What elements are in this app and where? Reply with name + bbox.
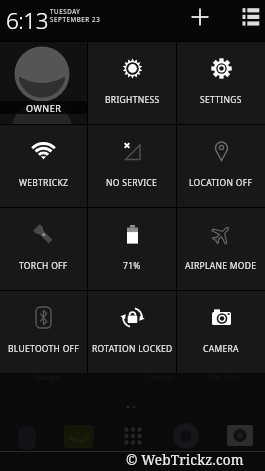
button[interactable]: BLUETOOTH OFF	[0, 291, 87, 373]
staticText: SETTINGS	[200, 94, 242, 106]
button[interactable]: WEBTRICKZ	[0, 125, 87, 207]
button[interactable]: 71%	[88, 208, 176, 290]
button[interactable]	[14, 421, 46, 453]
staticText: BLUETOOTH OFF	[8, 343, 80, 355]
staticText: CAMERA	[203, 343, 239, 355]
staticText: 6:13	[6, 5, 49, 36]
button[interactable]: NO SERVICE	[88, 125, 176, 207]
staticText: WEBTRICKZ	[19, 177, 69, 189]
button[interactable]	[242, 6, 262, 26]
staticText: 71%	[123, 260, 141, 272]
button[interactable]: BRIGHTNESS	[88, 42, 176, 124]
staticText: AIRPLANE MODE	[185, 260, 257, 272]
staticText: ROTATION LOCKED	[92, 343, 173, 355]
staticText: Settings	[148, 373, 175, 383]
button[interactable]	[170, 421, 202, 453]
staticText: Play Store	[208, 373, 241, 383]
staticText: BRIGHTNESS	[105, 94, 160, 106]
staticText: TORCH OFF	[19, 260, 68, 272]
staticText: LOCATION OFF	[189, 177, 253, 189]
button[interactable]: LOCATION OFF	[177, 125, 265, 207]
staticText: Google	[36, 373, 60, 383]
button[interactable]	[190, 7, 210, 27]
button[interactable]: SETTINGS	[177, 42, 265, 124]
button[interactable]: OWNER	[0, 42, 87, 124]
staticText: © WebTrickz.com	[126, 451, 244, 469]
button[interactable]: ROTATION LOCKED	[88, 291, 176, 373]
staticText: OWNER	[26, 102, 62, 114]
staticText: SEPTEMBER 23	[50, 15, 101, 23]
button[interactable]	[66, 421, 98, 453]
button[interactable]: TORCH OFF	[0, 208, 87, 290]
button[interactable]	[118, 421, 150, 453]
button[interactable]: AIRPLANE MODE	[177, 208, 265, 290]
button[interactable]: CAMERA	[177, 291, 265, 373]
staticText: TUESDAY	[50, 7, 81, 15]
button[interactable]	[222, 421, 254, 453]
staticText: NO SERVICE	[106, 177, 158, 189]
